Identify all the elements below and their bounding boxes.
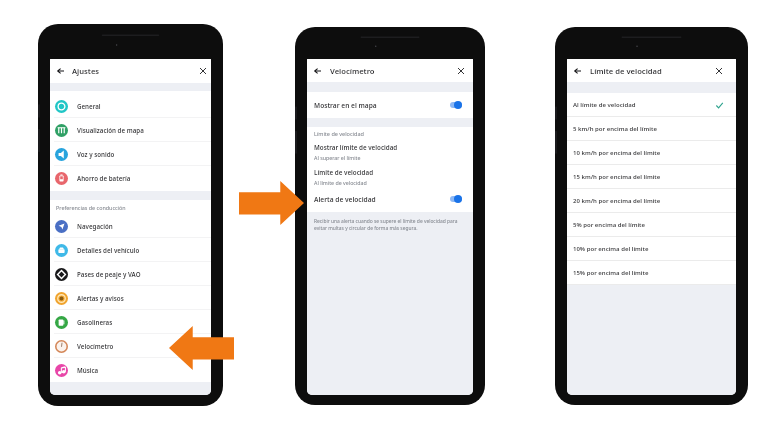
staticText: Voz y sonido	[77, 150, 115, 158]
staticText: Ajustes	[72, 66, 100, 76]
staticText: Límite de velocidad	[314, 168, 374, 177]
button[interactable]: 15 km/h por encima del límite	[567, 165, 736, 189]
button[interactable]: Límite de velocidad	[307, 164, 473, 189]
button[interactable]: Mostrar en el mapa	[307, 92, 473, 118]
button[interactable]: Alerta de velocidad	[307, 189, 473, 209]
staticText: 20 km/h por encima del límite	[573, 197, 661, 205]
button[interactable]: Back	[53, 59, 67, 83]
staticText: Ahorro de batería	[77, 174, 131, 182]
button[interactable]: Alertas y avisos	[50, 286, 211, 310]
staticText: 15% por encima del límite	[573, 269, 649, 277]
button[interactable]: Close	[197, 59, 209, 83]
staticText: Velocímetro	[77, 342, 114, 350]
button[interactable]: Voz y sonido	[50, 142, 211, 166]
staticText: Recibir una alerta cuando se supere el l…	[314, 218, 466, 232]
button[interactable]: 20 km/h por encima del límite	[567, 189, 736, 213]
button[interactable]: 5% por encima del límite	[567, 213, 736, 237]
button[interactable]: Música	[50, 358, 211, 382]
staticText: Límite de velocidad	[314, 130, 364, 137]
staticText: Música	[77, 366, 99, 374]
button[interactable]: Detalles del vehículo	[50, 238, 211, 262]
staticText: Mostrar en el mapa	[314, 101, 377, 110]
button[interactable]: Close	[713, 59, 725, 82]
staticText: Límite de velocidad	[590, 66, 662, 76]
staticText: Al límite de velocidad	[573, 101, 636, 109]
staticText: 5 km/h por encima del límite	[573, 125, 657, 133]
button[interactable]: 10% por encima del límite	[567, 237, 736, 261]
button[interactable]: Navegación	[50, 214, 211, 238]
staticText: Alertas y avisos	[77, 294, 124, 302]
button[interactable]: Gasolineras	[50, 310, 211, 334]
staticText: 10% por encima del límite	[573, 245, 649, 253]
staticText: Visualización de mapa	[77, 126, 144, 134]
staticText: Preferencias de conducción	[56, 204, 126, 211]
button[interactable]: 15% por encima del límite	[567, 261, 736, 285]
button[interactable]: General	[50, 94, 211, 118]
button[interactable]: Visualización de mapa	[50, 118, 211, 142]
button[interactable]: Back	[310, 59, 324, 82]
button[interactable]: 5 km/h por encima del límite	[567, 117, 736, 141]
button[interactable]: 10 km/h por encima del límite	[567, 141, 736, 165]
staticText: 10 km/h por encima del límite	[573, 149, 661, 157]
staticText: Navegación	[77, 222, 113, 230]
button[interactable]: Velocímetro	[50, 334, 211, 358]
staticText: General	[77, 102, 101, 110]
button[interactable]: Close	[455, 59, 467, 82]
staticText: Alerta de velocidad	[314, 195, 376, 204]
button[interactable]: Al límite de velocidad	[567, 93, 736, 117]
staticText: 15 km/h por encima del límite	[573, 173, 661, 181]
staticText: Velocímetro	[330, 66, 375, 76]
staticText: Mostrar límite de velocidad	[314, 143, 398, 152]
staticText: 5% por encima del límite	[573, 221, 646, 229]
button[interactable]: Pases de peaje y VAO	[50, 262, 211, 286]
staticText: Al superar el límite	[314, 154, 361, 161]
button[interactable]: Ahorro de batería	[50, 166, 211, 190]
staticText: Gasolineras	[77, 318, 113, 326]
staticText: Al límite de velocidad	[314, 179, 367, 186]
button[interactable]: Mostrar límite de velocidad	[307, 139, 473, 164]
staticText: Pases de peaje y VAO	[77, 270, 141, 278]
button[interactable]: Back	[570, 59, 584, 82]
staticText: Detalles del vehículo	[77, 246, 140, 254]
